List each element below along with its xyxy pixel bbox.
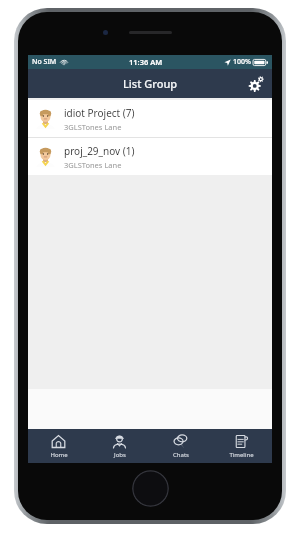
button[interactable]: Timeline (211, 429, 272, 463)
staticText: idiot Project (7) (64, 106, 135, 120)
button[interactable]: Chats (150, 429, 211, 463)
staticText: Chats (173, 451, 189, 459)
staticText: Home (50, 451, 68, 459)
button[interactable]: Settings (245, 73, 267, 95)
staticText: Jobs (114, 451, 126, 459)
staticText: List Group (123, 76, 178, 91)
staticText: 3GLSTones Lane (64, 160, 122, 170)
staticText: Timeline (229, 451, 254, 459)
button[interactable]: Home button (132, 470, 169, 507)
staticText: 11:36 AM (129, 57, 163, 67)
staticText: 3GLSTones Lane (64, 122, 122, 132)
button[interactable]: proj_29_nov (1) (28, 138, 272, 175)
button[interactable]: Jobs (89, 429, 150, 463)
button[interactable]: idiot Project (7) (28, 100, 272, 137)
button[interactable]: Home (28, 429, 89, 463)
staticText: proj_29_nov (1) (64, 144, 135, 158)
staticText: 100% (233, 57, 251, 67)
staticText: No SIM (32, 57, 57, 67)
